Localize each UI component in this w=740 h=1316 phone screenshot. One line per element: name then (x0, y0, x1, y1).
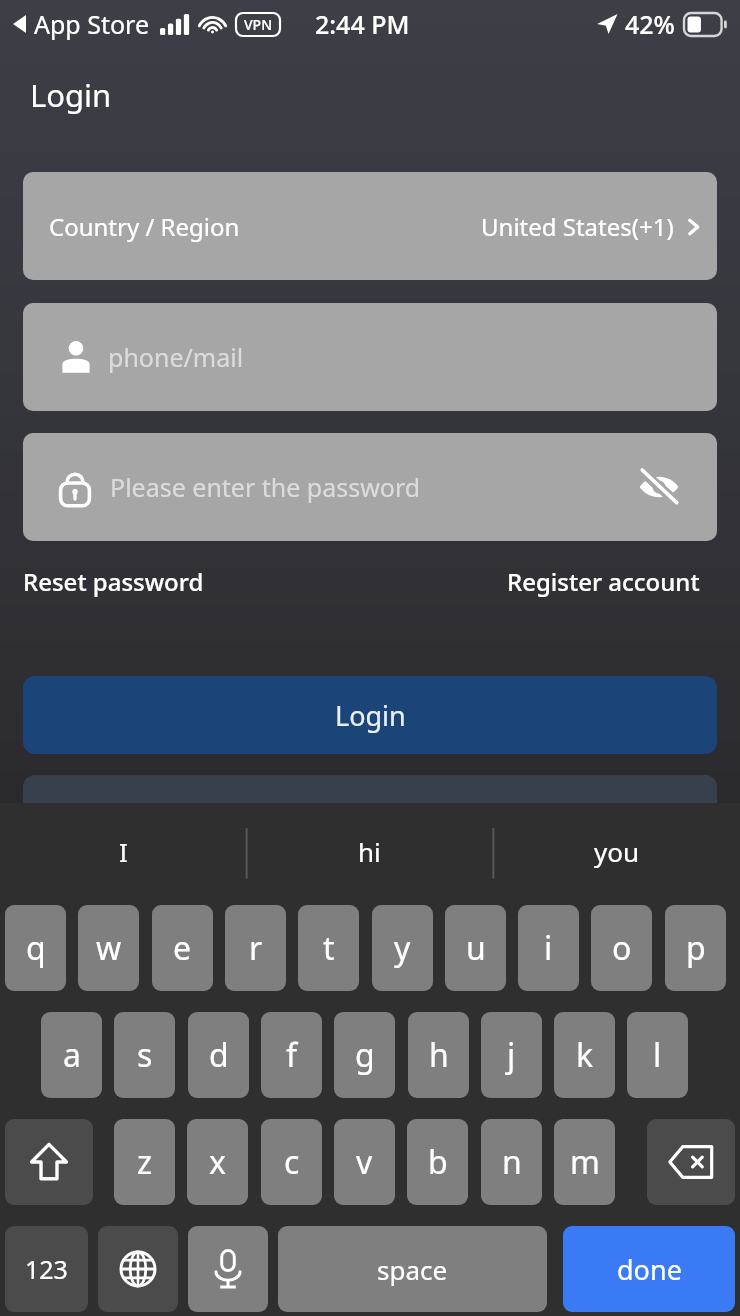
button[interactable]: Switch keyboard language (98, 1226, 178, 1312)
staticText: r (249, 926, 263, 970)
staticText: f (286, 1033, 298, 1077)
button[interactable]: space (278, 1226, 547, 1312)
button[interactable] (23, 775, 717, 853)
button[interactable]: you (493, 803, 740, 900)
button[interactable]: o (591, 905, 652, 991)
button[interactable]: Register account (507, 558, 700, 604)
button[interactable]: Shift (5, 1119, 93, 1205)
staticText: s (137, 1033, 153, 1077)
button[interactable]: p (665, 905, 726, 991)
staticText: VPN (244, 15, 273, 34)
staticText: hi (358, 834, 381, 869)
staticText: done (617, 1251, 682, 1288)
staticText: v (356, 1140, 373, 1184)
staticText: Please enter the password (110, 470, 421, 504)
staticText: Login (30, 74, 112, 116)
button[interactable]: m (554, 1119, 615, 1205)
staticText: Country / Region (49, 210, 240, 243)
staticText: k (576, 1033, 594, 1077)
staticText: a (63, 1033, 81, 1077)
staticText: 42% (625, 7, 675, 41)
button[interactable]: Backspace (647, 1119, 735, 1205)
staticText: b (428, 1140, 448, 1184)
staticText: Login (335, 697, 406, 734)
button[interactable]: phone/mail (23, 303, 717, 411)
staticText: App Store (34, 7, 150, 41)
button[interactable]: e (152, 905, 213, 991)
staticText: j (507, 1033, 516, 1077)
button[interactable]: I (0, 803, 246, 900)
button[interactable]: r (225, 905, 286, 991)
button[interactable]: i (518, 905, 579, 991)
button[interactable]: u (445, 905, 506, 991)
button[interactable]: z (114, 1119, 175, 1205)
staticText: u (466, 926, 486, 970)
button[interactable]: k (554, 1012, 615, 1098)
staticText: w (96, 926, 122, 970)
staticText: you (594, 834, 640, 869)
button[interactable]: q (5, 905, 66, 991)
button[interactable]: b (407, 1119, 468, 1205)
button[interactable]: j (481, 1012, 542, 1098)
button[interactable]: h (408, 1012, 469, 1098)
staticText: l (653, 1033, 662, 1077)
staticText: United States(+1) (481, 210, 674, 243)
button[interactable]: Please enter the password (23, 433, 717, 541)
button[interactable]: n (481, 1119, 542, 1205)
button[interactable]: done (563, 1226, 735, 1312)
staticText: I (119, 834, 128, 869)
staticText: q (26, 926, 46, 970)
button[interactable]: 123 (5, 1226, 88, 1312)
staticText: i (544, 926, 553, 970)
button[interactable]: Reset password (23, 558, 204, 604)
button[interactable]: y (372, 905, 433, 991)
button[interactable]: s (114, 1012, 175, 1098)
staticText: 123 (25, 1252, 68, 1286)
staticText: d (209, 1033, 229, 1077)
staticText: n (502, 1140, 522, 1184)
staticText: space (377, 1252, 448, 1287)
button[interactable]: Voice input (188, 1226, 268, 1312)
staticText: h (429, 1033, 449, 1077)
staticText: phone/mail (108, 340, 244, 374)
staticText: o (612, 926, 632, 970)
staticText: p (686, 926, 706, 970)
button[interactable]: f (261, 1012, 322, 1098)
staticText: t (323, 926, 335, 970)
staticText: Reset password (23, 565, 204, 598)
staticText: z (137, 1140, 153, 1184)
button[interactable]: w (78, 905, 139, 991)
staticText: Register account (507, 565, 700, 598)
staticText: 2:44 PM (315, 7, 410, 41)
button[interactable]: d (188, 1012, 249, 1098)
staticText: e (173, 926, 192, 970)
staticText: g (355, 1033, 375, 1077)
button[interactable]: v (334, 1119, 395, 1205)
button[interactable]: Login (23, 676, 717, 754)
button[interactable]: l (627, 1012, 688, 1098)
button[interactable]: g (334, 1012, 395, 1098)
button[interactable]: t (298, 905, 359, 991)
button[interactable]: hi (246, 803, 493, 900)
button[interactable]: Country / Region (23, 172, 717, 280)
button[interactable]: c (261, 1119, 322, 1205)
button[interactable]: Show password (635, 463, 683, 511)
staticText: x (209, 1140, 226, 1184)
button[interactable]: a (41, 1012, 102, 1098)
staticText: y (394, 926, 411, 970)
button[interactable]: x (187, 1119, 248, 1205)
staticText: m (570, 1140, 600, 1184)
staticText: c (284, 1140, 300, 1184)
